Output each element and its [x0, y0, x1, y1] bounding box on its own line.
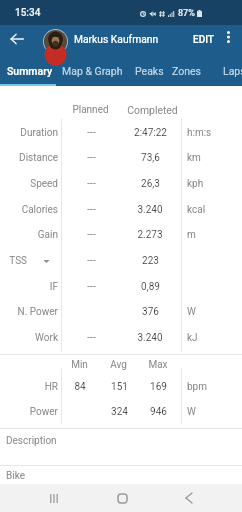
staticText: 169 — [150, 381, 167, 393]
staticText: 3.240 — [137, 332, 163, 344]
staticText: 324 — [111, 406, 128, 418]
staticText: 151 — [111, 381, 128, 393]
staticText: 84 — [74, 381, 86, 393]
staticText: Summary — [7, 65, 53, 77]
staticText: --- — [87, 281, 96, 293]
staticText: 223 — [142, 255, 159, 267]
staticText: HR — [44, 381, 58, 393]
staticText: Peaks — [135, 65, 164, 77]
staticText: TSS — [9, 255, 27, 267]
button[interactable]: Zones — [165, 58, 208, 84]
staticText: --- — [87, 178, 96, 190]
staticText: 73,6 — [141, 152, 160, 164]
staticText: W — [187, 406, 196, 418]
staticText: Power — [29, 406, 58, 418]
button[interactable]: EDIT — [186, 29, 220, 50]
staticText: Description — [6, 435, 57, 447]
button[interactable]: Description — [0, 429, 242, 465]
staticText: h:m:s — [187, 127, 212, 139]
staticText: 15:34 — [15, 7, 41, 19]
staticText: --- — [87, 152, 96, 164]
button[interactable]: Home — [108, 484, 136, 512]
staticText: 376 — [142, 306, 159, 318]
staticText: Completed — [127, 104, 178, 116]
button[interactable]: Profile photo — [43, 29, 68, 54]
staticText: Gain — [37, 229, 58, 241]
staticText: Max — [148, 359, 168, 371]
button[interactable]: Map & Graph — [56, 58, 129, 84]
staticText: Markus Kaufmann — [74, 33, 159, 45]
staticText: 2:47:22 — [134, 127, 167, 139]
staticText: Bike — [6, 470, 25, 482]
staticText: km — [187, 152, 201, 164]
staticText: Map & Graph — [62, 65, 123, 77]
staticText: 26,3 — [141, 178, 160, 190]
staticText: Duration — [20, 127, 58, 139]
staticText: 2.273 — [137, 229, 163, 241]
staticText: Min — [71, 359, 88, 371]
staticText: kJ — [187, 332, 198, 344]
button[interactable]: Peaks — [129, 58, 170, 84]
staticText: 0,89 — [141, 281, 160, 293]
staticText: bpm — [187, 381, 207, 393]
staticText: --- — [87, 332, 96, 344]
staticText: kcal — [187, 204, 206, 216]
staticText: kph — [187, 178, 204, 190]
staticText: 3.240 — [137, 204, 163, 216]
staticText: Distance — [19, 152, 58, 164]
staticText: --- — [87, 255, 96, 267]
staticText: W — [187, 306, 196, 318]
staticText: Laps — [223, 65, 242, 77]
staticText: Zones — [172, 65, 201, 77]
staticText: Calories — [21, 204, 58, 216]
staticText: --- — [87, 204, 96, 216]
staticText: Work — [35, 332, 58, 344]
staticText: EDIT — [193, 34, 214, 46]
button[interactable]: Bike — [0, 465, 242, 484]
staticText: Planned — [72, 104, 109, 116]
staticText: 946 — [150, 406, 167, 418]
staticText: --- — [87, 229, 96, 241]
button[interactable]: Back — [175, 484, 203, 512]
staticText: IF — [49, 281, 58, 293]
staticText: N. Power — [17, 306, 58, 318]
button[interactable]: Laps — [216, 58, 242, 84]
staticText: 87% — [178, 8, 195, 19]
button[interactable]: Recent apps — [40, 484, 68, 512]
staticText: Avg — [110, 359, 127, 371]
button[interactable]: More options — [220, 28, 237, 45]
staticText: m — [187, 229, 196, 241]
button[interactable]: Back — [5, 27, 29, 51]
button[interactable]: Summary — [0, 58, 59, 84]
staticText: --- — [87, 127, 96, 139]
staticText: Speed — [30, 178, 58, 190]
